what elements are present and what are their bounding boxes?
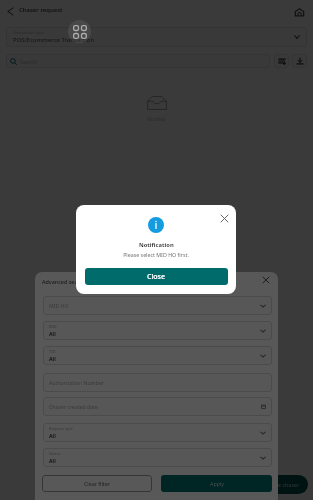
button[interactable]: Search xyxy=(6,54,270,68)
staticText: All xyxy=(49,355,56,362)
staticText: Please select MID HO first. xyxy=(123,251,189,258)
button[interactable]: MID HO xyxy=(43,296,272,315)
staticText: Create chaser xyxy=(264,481,300,488)
staticText: All xyxy=(49,457,56,464)
staticText: Chaser created date xyxy=(49,403,98,410)
staticText: Status xyxy=(49,451,61,456)
staticText: POS/Ecommerce Transaction xyxy=(13,36,95,44)
button[interactable]: Close xyxy=(216,210,232,226)
button[interactable]: Authorization Number xyxy=(43,373,272,392)
staticText: Transaction type xyxy=(13,30,44,35)
button[interactable]: Home xyxy=(290,3,308,21)
staticText: All xyxy=(49,330,56,337)
staticText: Search xyxy=(20,58,38,65)
button[interactable]: Create chaser xyxy=(256,475,308,494)
button[interactable]: TID xyxy=(43,346,272,365)
button[interactable]: Filter xyxy=(274,54,289,68)
staticText: TID xyxy=(49,349,56,354)
button[interactable]: MID xyxy=(43,321,272,340)
staticText: Chaser request xyxy=(19,6,63,14)
staticText: MID HO xyxy=(49,302,69,309)
staticText: Apply xyxy=(210,480,224,487)
staticText: Request type xyxy=(49,426,73,431)
staticText: Clear filter xyxy=(84,480,110,487)
button[interactable]: Transaction type xyxy=(6,27,307,47)
staticText: Advanced search xyxy=(42,278,86,285)
button[interactable]: Request type xyxy=(43,423,272,442)
button[interactable]: Download xyxy=(292,54,307,68)
button[interactable]: Status xyxy=(43,448,272,467)
staticText: All xyxy=(49,432,56,439)
staticText: MID xyxy=(49,324,57,329)
button[interactable]: Close advanced search xyxy=(259,273,273,287)
button[interactable]: Chaser created date xyxy=(43,397,272,416)
staticText: Notification xyxy=(139,241,174,249)
staticText: No data xyxy=(147,116,166,123)
button[interactable]: Close xyxy=(85,268,228,285)
button[interactable]: Apply xyxy=(161,475,272,492)
button[interactable]: Clear filter xyxy=(42,475,152,492)
staticText: Authorization Number xyxy=(49,379,104,386)
staticText: Close xyxy=(147,272,166,282)
button[interactable]: Back xyxy=(2,3,19,20)
